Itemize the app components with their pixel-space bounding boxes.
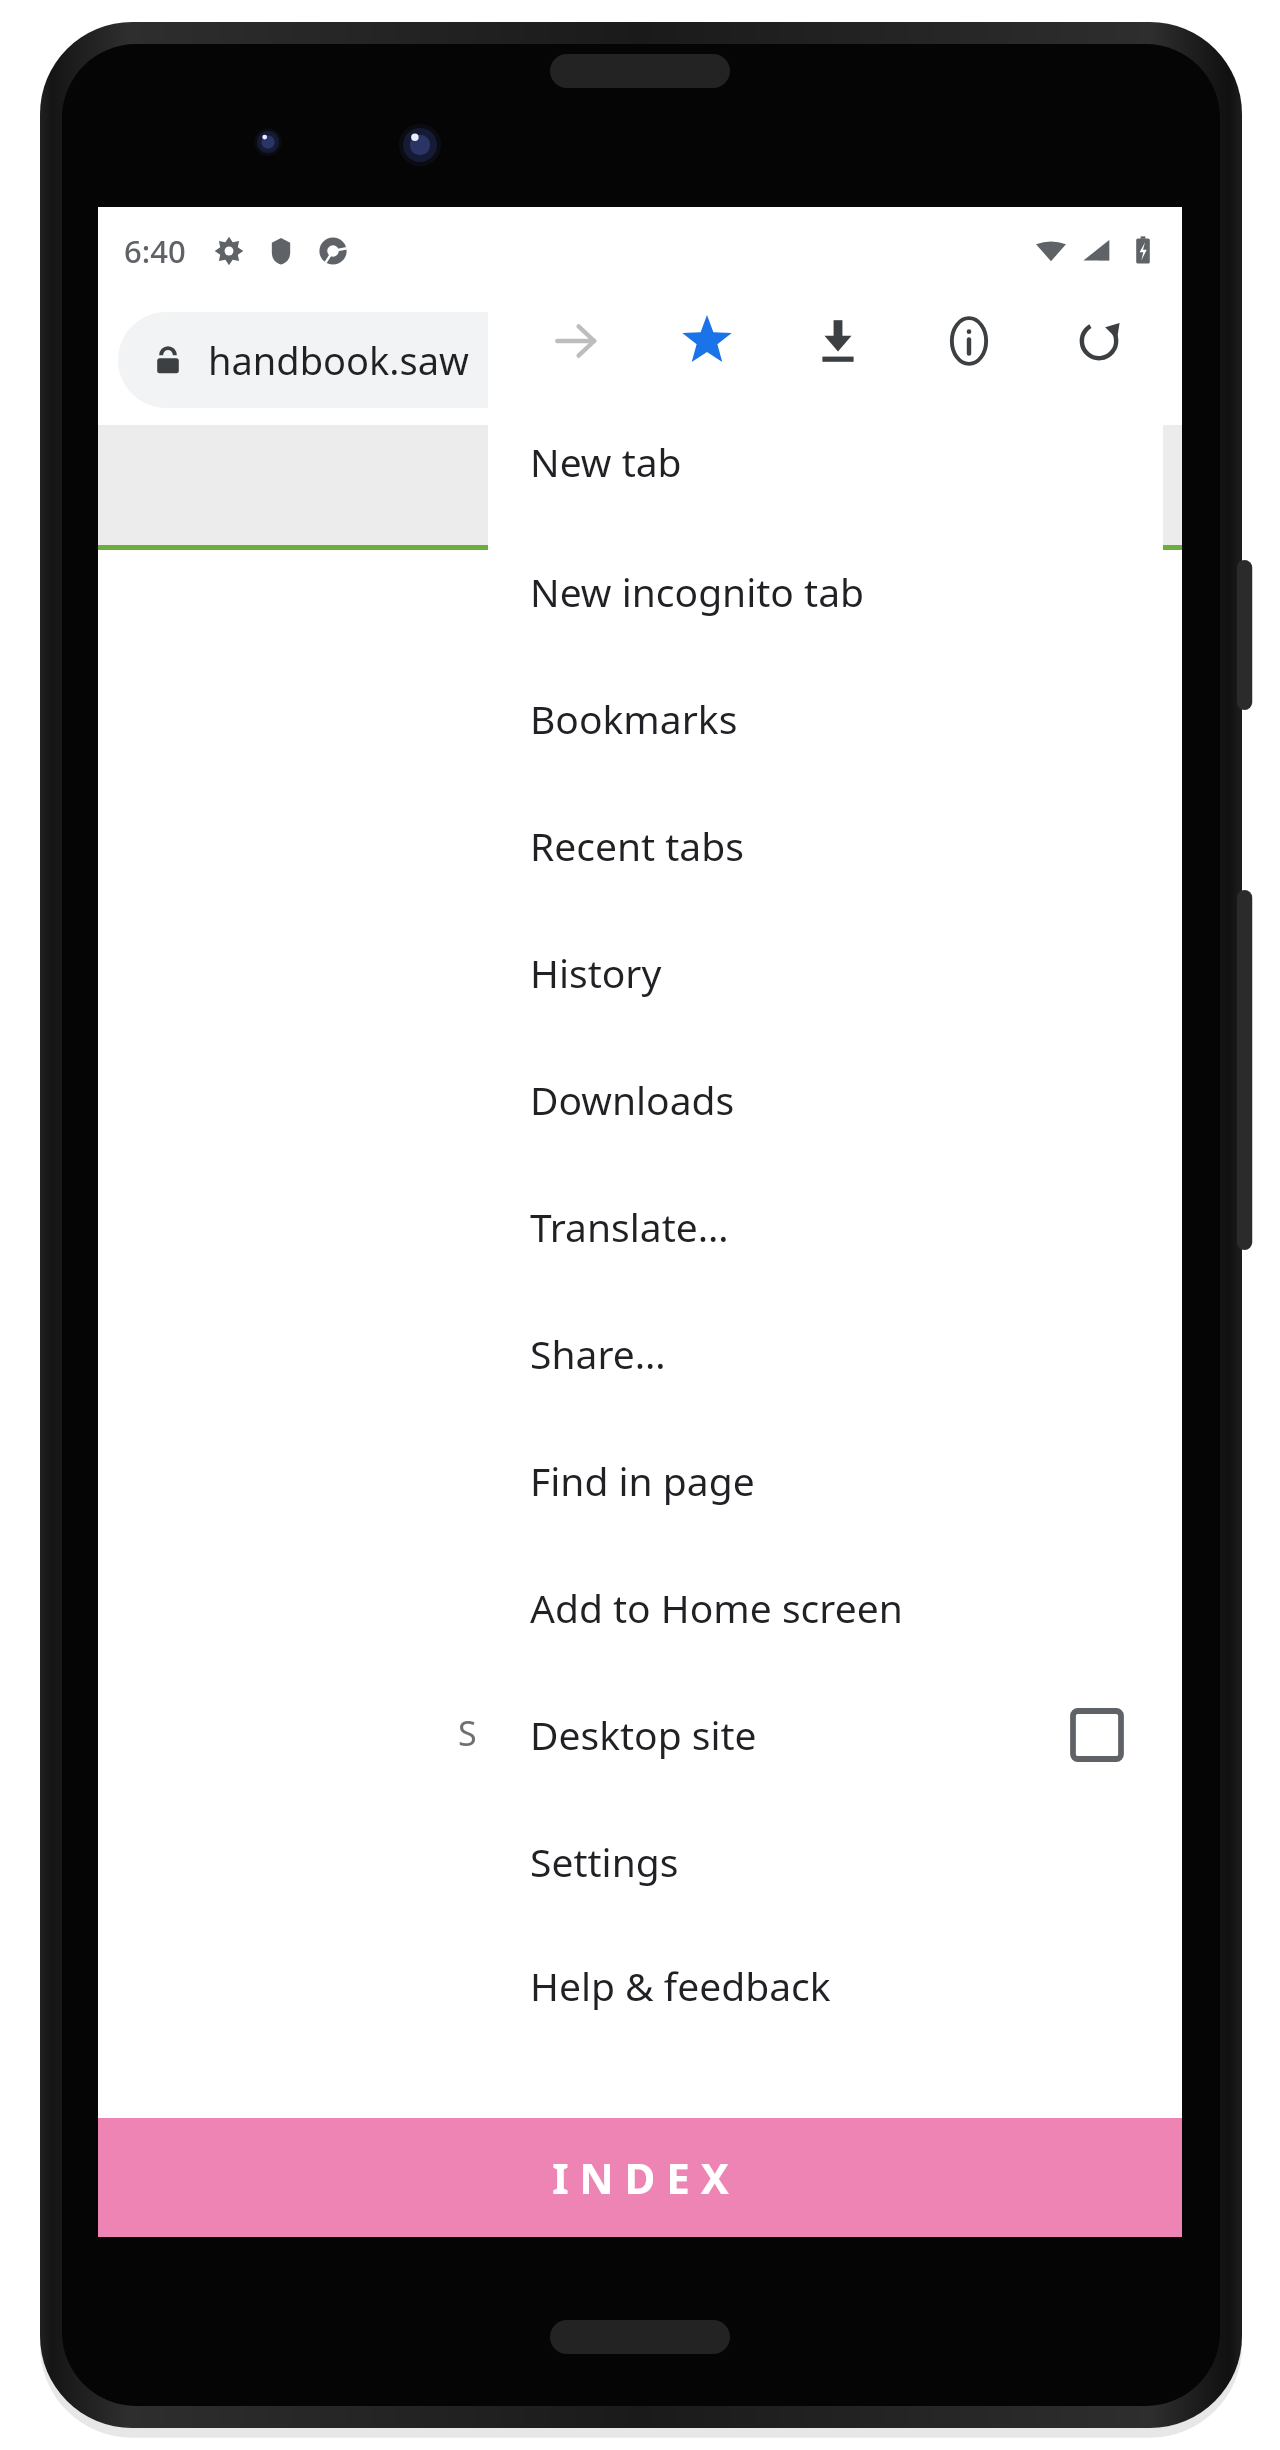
- button[interactable]: Find in page: [488, 1417, 1163, 1544]
- staticText: History: [530, 946, 662, 999]
- button[interactable]: Add to Home screen: [488, 1544, 1163, 1671]
- button[interactable]: handbook.saw: [118, 312, 1162, 408]
- button[interactable]: New tab: [488, 394, 1163, 528]
- staticText: Help & feedback: [530, 1959, 831, 2012]
- button[interactable]: Page info: [903, 288, 1034, 394]
- staticText: handbook.saw: [208, 334, 469, 386]
- button[interactable]: History: [488, 909, 1163, 1036]
- button[interactable]: Share…: [488, 1290, 1163, 1417]
- button[interactable]: Bookmarks: [488, 655, 1163, 782]
- button[interactable]: Settings: [488, 1798, 1163, 1925]
- button[interactable]: Forward: [510, 288, 641, 394]
- staticText: Settings: [530, 1835, 679, 1888]
- staticText: Share…: [530, 1327, 666, 1380]
- button[interactable]: Recent tabs: [488, 782, 1163, 909]
- staticText: Translate…: [530, 1200, 729, 1253]
- staticText: New incognito tab: [530, 565, 865, 618]
- staticText: 6:40: [124, 230, 186, 272]
- button[interactable]: I N D E X: [98, 2118, 1182, 2237]
- button[interactable]: Translate…: [488, 1163, 1163, 1290]
- button[interactable]: Desktop site: [488, 1671, 1163, 1798]
- staticText: Bookmarks: [530, 692, 738, 745]
- staticText: Find in page: [530, 1454, 755, 1507]
- staticText: New tab: [530, 435, 682, 488]
- staticText: Downloads: [530, 1073, 735, 1126]
- button[interactable]: Reload: [1034, 288, 1163, 394]
- button[interactable]: Help & feedback: [488, 1925, 1163, 2045]
- button[interactable]: Download: [772, 288, 903, 394]
- staticText: I N D E X: [552, 2149, 729, 2206]
- button[interactable]: Bookmark: [641, 288, 772, 394]
- button[interactable]: Downloads: [488, 1036, 1163, 1163]
- staticText: Add to Home screen: [530, 1581, 903, 1634]
- staticText: Desktop site: [530, 1708, 757, 1761]
- button[interactable]: New incognito tab: [488, 528, 1163, 655]
- staticText: Recent tabs: [530, 819, 744, 872]
- staticText: S: [458, 1710, 477, 1756]
